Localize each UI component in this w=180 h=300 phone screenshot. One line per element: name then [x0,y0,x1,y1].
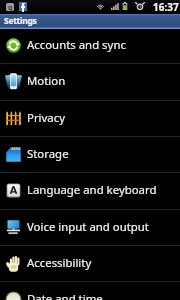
button[interactable]: Date and time [0,282,180,300]
staticText: Motion [27,73,66,89]
staticText: Language and keyboard [27,182,157,198]
button[interactable]: Accounts and sync [0,28,180,64]
staticText: 16:37 [153,0,179,14]
staticText: Storage [27,146,69,162]
staticText: Voice input and output [27,219,149,235]
button[interactable]: Voice input and output [0,210,180,246]
button[interactable]: Privacy [0,101,180,137]
button[interactable]: Accessibility [0,246,180,282]
staticText: Accessibility [27,255,92,271]
button[interactable]: Motion [0,64,180,100]
staticText: Privacy [27,110,65,126]
button[interactable]: Language and keyboard [0,173,180,209]
staticText: Accounts and sync [27,37,126,53]
staticText: Date and time [27,291,103,300]
button[interactable]: Storage [0,137,180,173]
staticText: Settings [4,15,37,27]
staticText: g [8,3,13,11]
